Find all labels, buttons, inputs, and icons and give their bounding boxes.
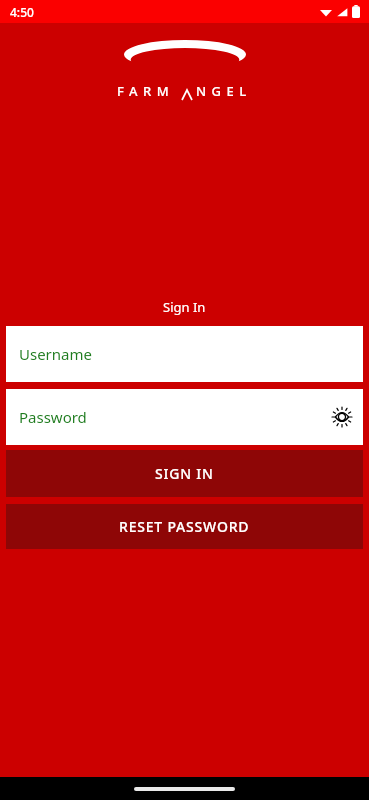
button[interactable]: Password xyxy=(6,389,363,445)
staticText: Username xyxy=(19,344,92,364)
staticText: 4:50 xyxy=(10,4,34,20)
staticText: RESET PASSWORD xyxy=(119,517,250,536)
staticText: FARM xyxy=(117,82,175,100)
button[interactable]: Username xyxy=(6,326,363,382)
button[interactable]: SIGN IN xyxy=(6,450,363,497)
button[interactable]: RESET PASSWORD xyxy=(6,504,363,549)
button[interactable]: Show password xyxy=(330,405,354,429)
staticText: NGEL xyxy=(196,82,252,100)
staticText: Password xyxy=(19,407,87,427)
staticText: Sign In xyxy=(163,298,206,316)
staticText: SIGN IN xyxy=(155,464,214,483)
